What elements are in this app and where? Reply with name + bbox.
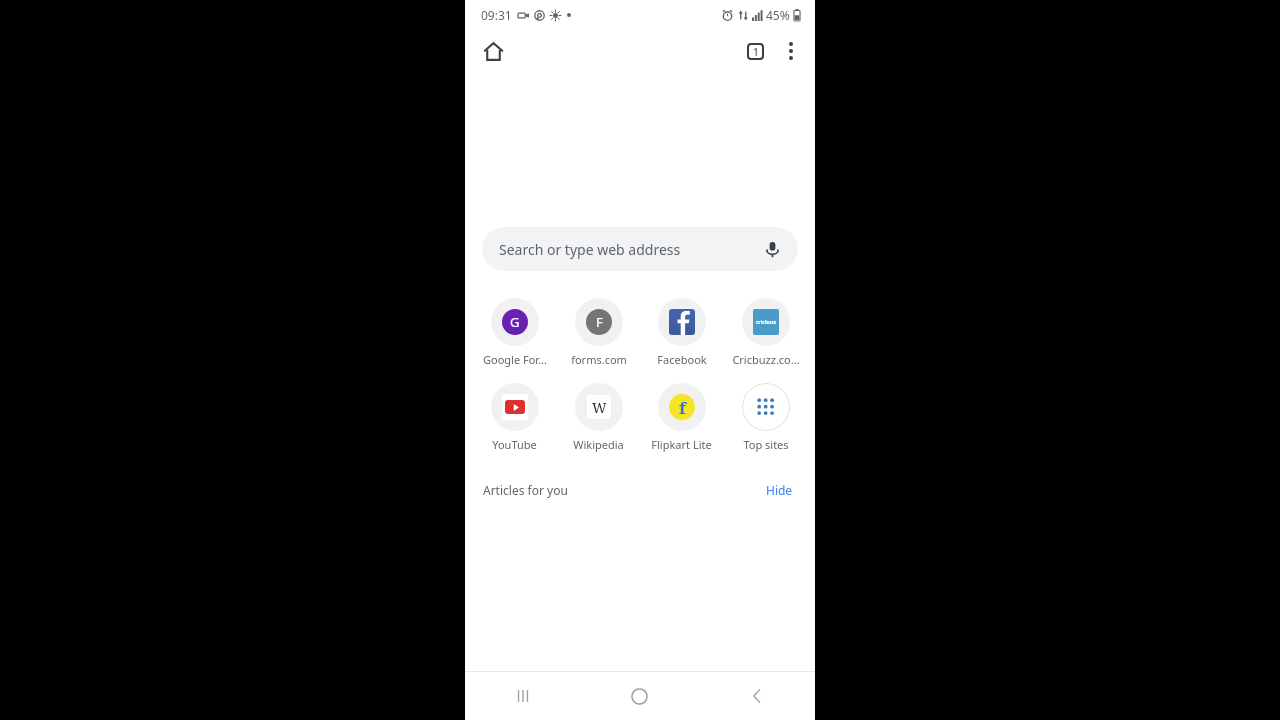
staticText: Top sites	[743, 437, 789, 452]
staticText: Facebook	[657, 352, 707, 367]
button[interactable]: Home	[581, 672, 698, 720]
button[interactable]: f	[640, 379, 723, 456]
button[interactable]: Recent apps	[465, 672, 581, 720]
staticText: 1	[753, 45, 759, 59]
button[interactable]: F	[557, 294, 640, 371]
staticText: Flipkart Lite	[651, 437, 712, 452]
staticText: cricbuzz	[756, 319, 777, 326]
button[interactable]: Tabs, 1 open	[737, 33, 773, 69]
button[interactable]: Facebook	[640, 294, 723, 371]
button[interactable]: W	[557, 379, 640, 456]
button[interactable]: Hide	[762, 480, 797, 500]
button[interactable]: cricbuzz	[724, 294, 807, 371]
staticText: F	[596, 313, 603, 331]
button[interactable]: YouTube	[473, 379, 556, 456]
staticText: 45%	[766, 7, 790, 23]
staticText: forms.com	[571, 352, 627, 367]
button[interactable]: More options	[773, 33, 809, 69]
button[interactable]: Voice search	[760, 237, 784, 261]
staticText: Wikipedia	[573, 437, 624, 452]
staticText: YouTube	[492, 437, 537, 452]
staticText: Search or type web address	[499, 240, 760, 259]
staticText: Google For...	[483, 352, 547, 367]
staticText: Hide	[766, 482, 793, 498]
button[interactable]: Search or type web address	[482, 227, 798, 271]
button[interactable]: Back	[698, 672, 815, 720]
staticText: Articles for you	[483, 482, 568, 498]
staticText: f	[679, 396, 686, 419]
staticText: G	[510, 313, 520, 331]
button[interactable]: G	[473, 294, 556, 371]
button[interactable]: Top sites	[724, 379, 807, 456]
staticText: W	[592, 398, 607, 417]
staticText: Cricbuzz.co...	[732, 352, 800, 367]
button[interactable]: Home	[475, 33, 511, 69]
staticText: 09:31	[481, 7, 512, 23]
